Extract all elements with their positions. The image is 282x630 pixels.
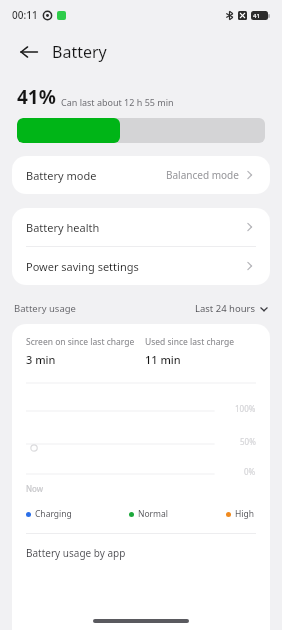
staticText: Charging <box>35 508 72 520</box>
staticText: Now <box>26 483 44 494</box>
staticText: Battery mode <box>26 168 97 183</box>
button[interactable]: Battery mode <box>12 156 270 194</box>
staticText: Battery usage <box>14 302 76 315</box>
staticText: 50% <box>240 436 256 447</box>
staticText: High <box>235 508 254 520</box>
staticText: Battery health <box>26 220 100 235</box>
staticText: 41% <box>17 84 56 110</box>
button[interactable]: Last 24 hours <box>195 302 268 315</box>
staticText: Power saving settings <box>26 259 139 274</box>
button[interactable]: Battery health <box>12 208 270 246</box>
button[interactable]: Battery usage by app <box>12 546 270 560</box>
staticText: Used since last charge <box>145 336 234 348</box>
button[interactable]: Back <box>12 35 46 69</box>
staticText: 0% <box>244 466 256 477</box>
staticText: Can last about 12 h 55 min <box>61 96 174 108</box>
staticText: Screen on since last charge <box>26 336 135 348</box>
button[interactable]: Power saving settings <box>12 247 270 285</box>
staticText: Last 24 hours <box>195 302 256 315</box>
staticText: Battery usage by app <box>26 546 126 560</box>
staticText: Battery <box>52 41 107 63</box>
staticText: 11 min <box>145 352 181 367</box>
staticText: Balanced mode <box>166 168 239 182</box>
staticText: 3 min <box>26 352 56 367</box>
staticText: 41 <box>253 12 260 20</box>
staticText: Normal <box>138 508 169 520</box>
staticText: 00:11 <box>12 8 38 22</box>
staticText: 100% <box>235 403 256 414</box>
